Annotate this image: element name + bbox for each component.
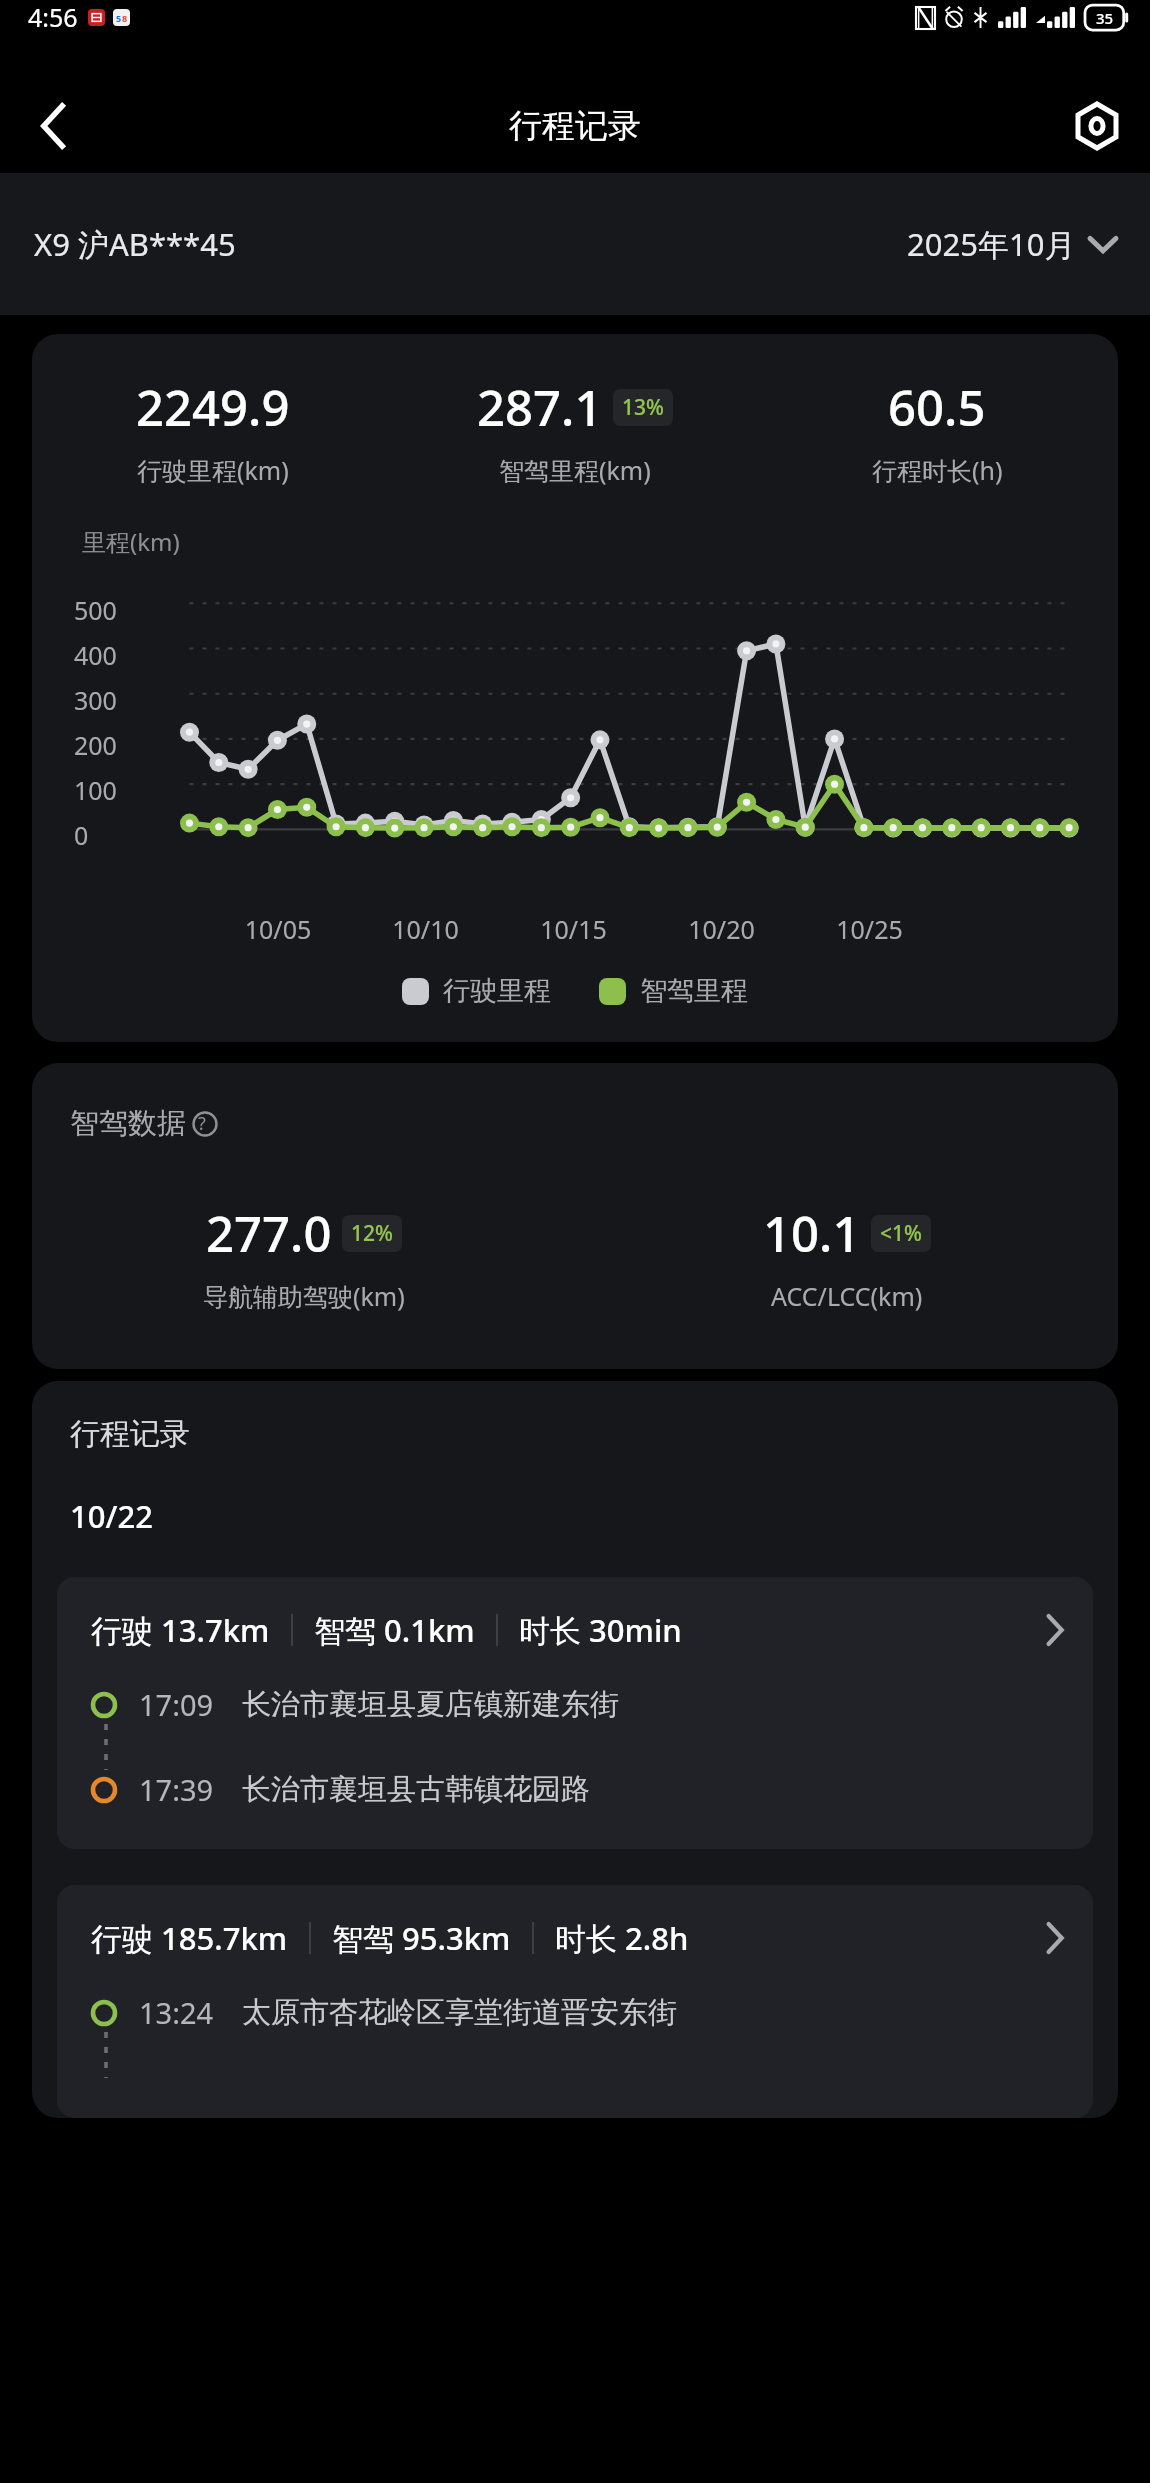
button[interactable]: X9 沪AB***45: [34, 223, 236, 265]
staticText: 17:09: [139, 1685, 214, 1724]
staticText: 智驾 95.3km: [332, 1917, 511, 1959]
staticText: 12%: [351, 1219, 393, 1248]
staticText: 行程时长(h): [872, 453, 1003, 487]
staticText: 2249.9: [136, 374, 290, 441]
staticText: 277.0: [206, 1200, 332, 1267]
button[interactable]: 行驶里程: [402, 974, 551, 1008]
staticText: 13:24: [139, 1993, 214, 2032]
button[interactable]: Settings: [1066, 95, 1128, 157]
staticText: 300: [74, 683, 134, 717]
staticText: 太原市杏花岭区享堂街道晋安东街: [242, 1994, 677, 2031]
button[interactable]: 行驶 185.7km: [57, 1885, 1093, 2118]
button[interactable]: 智驾里程: [599, 974, 748, 1008]
button[interactable]: 智驾数据: [70, 1105, 226, 1142]
staticText: 智驾里程(km): [499, 453, 651, 487]
button[interactable]: 行驶 13.7km: [57, 1577, 1093, 1849]
staticText: 智驾 0.1km: [314, 1609, 475, 1651]
staticText: 35: [1096, 8, 1114, 28]
staticText: 智驾数据: [70, 1105, 186, 1142]
staticText: 287.1: [477, 374, 603, 441]
staticText: 长治市襄垣县古韩镇花园路: [242, 1771, 590, 1808]
staticText: 智驾里程: [640, 974, 748, 1008]
staticText: 400: [74, 638, 134, 672]
staticText: 长治市襄垣县夏店镇新建东街: [242, 1686, 619, 1723]
staticText: 17:39: [139, 1770, 214, 1809]
staticText: 10/05: [219, 912, 337, 946]
staticText: 2025年10月: [907, 223, 1076, 265]
staticText: <1%: [880, 1219, 922, 1248]
staticText: 8: [122, 12, 128, 24]
staticText: 里程(km): [82, 525, 180, 558]
staticText: 行驶 13.7km: [91, 1609, 270, 1651]
staticText: 500: [74, 593, 134, 627]
staticText: 行驶里程(km): [137, 453, 289, 487]
staticText: 10/25: [810, 912, 929, 946]
staticText: 0: [74, 818, 134, 852]
staticText: 行程记录: [509, 105, 641, 147]
staticText: 行程记录: [70, 1415, 190, 1453]
staticText: 10/15: [514, 912, 633, 946]
staticText: 行驶 185.7km: [91, 1917, 288, 1959]
staticText: 10/22: [70, 1495, 153, 1537]
button[interactable]: Back: [22, 95, 84, 157]
staticText: ACC/LCC(km): [771, 1279, 923, 1313]
staticText: 4:56: [28, 0, 78, 34]
staticText: 200: [74, 728, 134, 762]
staticText: 100: [74, 773, 134, 807]
staticText: 导航辅助驾驶(km): [203, 1279, 405, 1313]
staticText: 10/10: [366, 912, 485, 946]
staticText: 13%: [622, 393, 664, 422]
staticText: 10/20: [662, 912, 781, 946]
staticText: 10.1: [763, 1200, 861, 1267]
staticText: 行驶里程: [443, 974, 551, 1008]
staticText: 时长 30min: [519, 1609, 682, 1651]
staticText: ?: [198, 1111, 206, 1136]
staticText: 时长 2.8h: [555, 1917, 689, 1959]
staticText: X9 沪AB***45: [34, 223, 236, 265]
button[interactable]: 2025年10月: [907, 215, 1116, 273]
staticText: 5: [116, 12, 122, 24]
staticText: 60.5: [888, 374, 986, 441]
